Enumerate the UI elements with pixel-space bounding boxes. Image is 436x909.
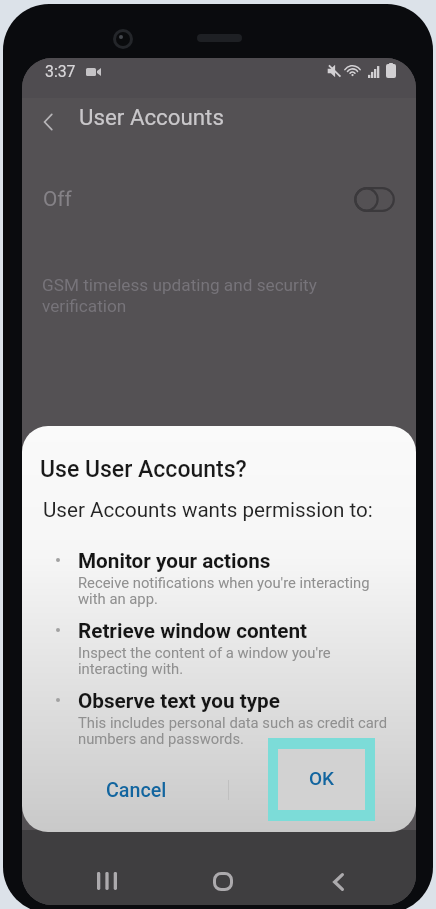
button[interactable]: OK — [268, 738, 375, 821]
button[interactable]: Back — [320, 867, 356, 897]
staticText: 3:37 — [45, 62, 76, 81]
staticText: This includes personal data such as cred… — [78, 714, 387, 747]
staticText: Observe text you type — [78, 689, 280, 713]
button[interactable]: Cancel — [74, 764, 198, 816]
button[interactable]: Back — [35, 108, 63, 136]
staticText: GSM timeless updating and security verif… — [42, 275, 317, 316]
staticText: User Accounts wants permission to: — [43, 498, 373, 522]
staticText: Use User Accounts? — [40, 456, 247, 483]
staticText: User Accounts — [79, 104, 224, 130]
staticText: Cancel — [106, 779, 167, 802]
button[interactable]: Home — [205, 866, 241, 896]
staticText: Retrieve window content — [78, 619, 307, 643]
staticText: Monitor your actions — [78, 549, 271, 573]
button[interactable]: Recent apps — [89, 866, 125, 896]
staticText: Receive notifications when you're intera… — [78, 574, 370, 607]
staticText: Off — [43, 187, 72, 211]
staticText: OK — [309, 767, 335, 789]
button[interactable]: Off — [22, 173, 416, 225]
staticText: Inspect the content of a window you're i… — [78, 644, 331, 677]
